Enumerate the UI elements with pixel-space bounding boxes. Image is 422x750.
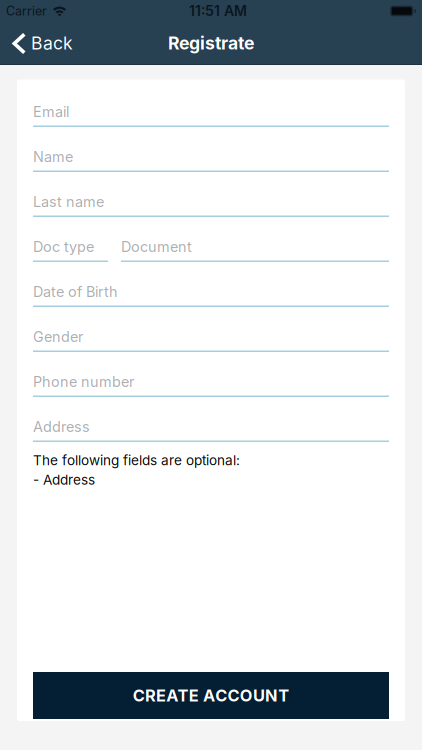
button[interactable]: Name xyxy=(33,127,389,172)
staticText: 11:51 AM xyxy=(189,2,247,19)
staticText: Gender xyxy=(33,328,83,345)
staticText: Document xyxy=(121,238,192,255)
staticText: CREATE ACCOUNT xyxy=(133,686,289,705)
button[interactable]: Doc type xyxy=(33,217,108,262)
staticText: Name xyxy=(33,148,73,165)
button[interactable]: Email xyxy=(33,82,389,127)
button[interactable]: Date of Birth xyxy=(33,262,389,307)
button[interactable]: CREATE ACCOUNT xyxy=(33,672,389,719)
staticText: Address xyxy=(33,418,90,435)
staticText: Date of Birth xyxy=(33,283,118,300)
button[interactable]: Gender xyxy=(33,307,389,352)
staticText: Back xyxy=(31,32,73,54)
button[interactable]: Document xyxy=(121,217,389,262)
staticText: Last name xyxy=(33,193,104,210)
button[interactable]: Phone number xyxy=(33,352,389,397)
staticText: - Address xyxy=(33,471,95,488)
staticText: Email xyxy=(33,103,69,120)
staticText: Carrier xyxy=(6,3,47,19)
staticText: Registrate xyxy=(168,32,254,54)
staticText: The following fields are optional: xyxy=(33,452,240,468)
staticText: Doc type xyxy=(33,238,94,255)
button[interactable]: Last name xyxy=(33,172,389,217)
button[interactable]: Address xyxy=(33,397,389,442)
button[interactable]: Back xyxy=(12,32,73,54)
staticText: Phone number xyxy=(33,373,134,390)
